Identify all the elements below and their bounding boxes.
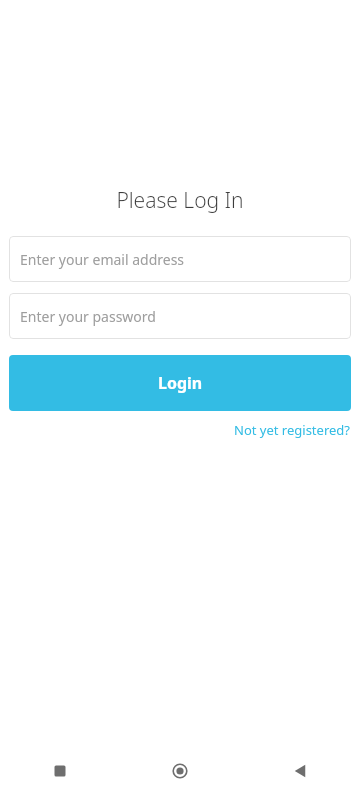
button[interactable]: Home: [120, 742, 240, 800]
button[interactable]: Recent apps: [0, 742, 120, 800]
staticText: Enter your email address: [20, 250, 185, 269]
staticText: Enter your password: [20, 307, 156, 326]
button[interactable]: Enter your password: [9, 293, 351, 339]
button[interactable]: Enter your email address: [9, 236, 351, 282]
staticText: Not yet registered?: [234, 421, 350, 439]
button[interactable]: Back: [240, 742, 360, 800]
staticText: Please Log In: [9, 186, 351, 215]
button[interactable]: Login: [9, 355, 351, 411]
button[interactable]: Not yet registered?: [233, 418, 351, 442]
staticText: Login: [158, 372, 203, 394]
